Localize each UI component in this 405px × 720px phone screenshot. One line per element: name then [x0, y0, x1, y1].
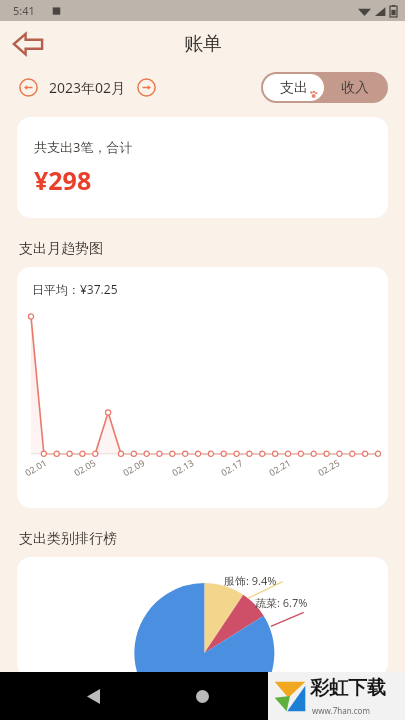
button[interactable]: Previous month [19, 78, 38, 97]
staticText: 5:41 [13, 3, 35, 18]
staticText: ¥298 [34, 163, 92, 197]
staticText: 服饰: 9.4% [224, 573, 277, 588]
staticText: 02.01 [23, 456, 49, 478]
staticText: 02.25 [316, 456, 342, 478]
staticText: www.7han.com [312, 705, 370, 716]
staticText: 支出类别排行榜 [19, 530, 117, 548]
button[interactable]: Back [9, 25, 47, 63]
staticText: 蔬菜: 6.7% [255, 595, 308, 610]
staticText: 支出月趋势图 [19, 240, 103, 258]
button[interactable]: 支出 [263, 74, 324, 101]
staticText: 02.21 [267, 456, 293, 478]
button[interactable]: Back [75, 678, 111, 714]
staticText: 2023年02月 [49, 78, 126, 97]
staticText: 支出 [280, 79, 308, 97]
staticText: 收入 [341, 79, 369, 97]
button[interactable]: Home [184, 678, 220, 714]
staticText: 共支出3笔，合计 [34, 138, 133, 156]
button[interactable]: Next month [137, 78, 156, 97]
staticText: 02.09 [121, 456, 147, 478]
staticText: 02.13 [170, 456, 196, 478]
staticText: 账单 [184, 32, 222, 56]
button[interactable]: 日平均：¥37.25 [17, 267, 388, 508]
button[interactable]: 共支出3笔，合计 [17, 117, 388, 218]
staticText: 日平均：¥37.25 [32, 281, 118, 297]
staticText: 彩虹下载 [310, 676, 386, 700]
staticText: 02.17 [219, 456, 245, 478]
button[interactable]: 收入 [324, 74, 386, 101]
staticText: 02.05 [72, 456, 98, 478]
button[interactable]: 服饰: 9.4% [17, 557, 388, 677]
